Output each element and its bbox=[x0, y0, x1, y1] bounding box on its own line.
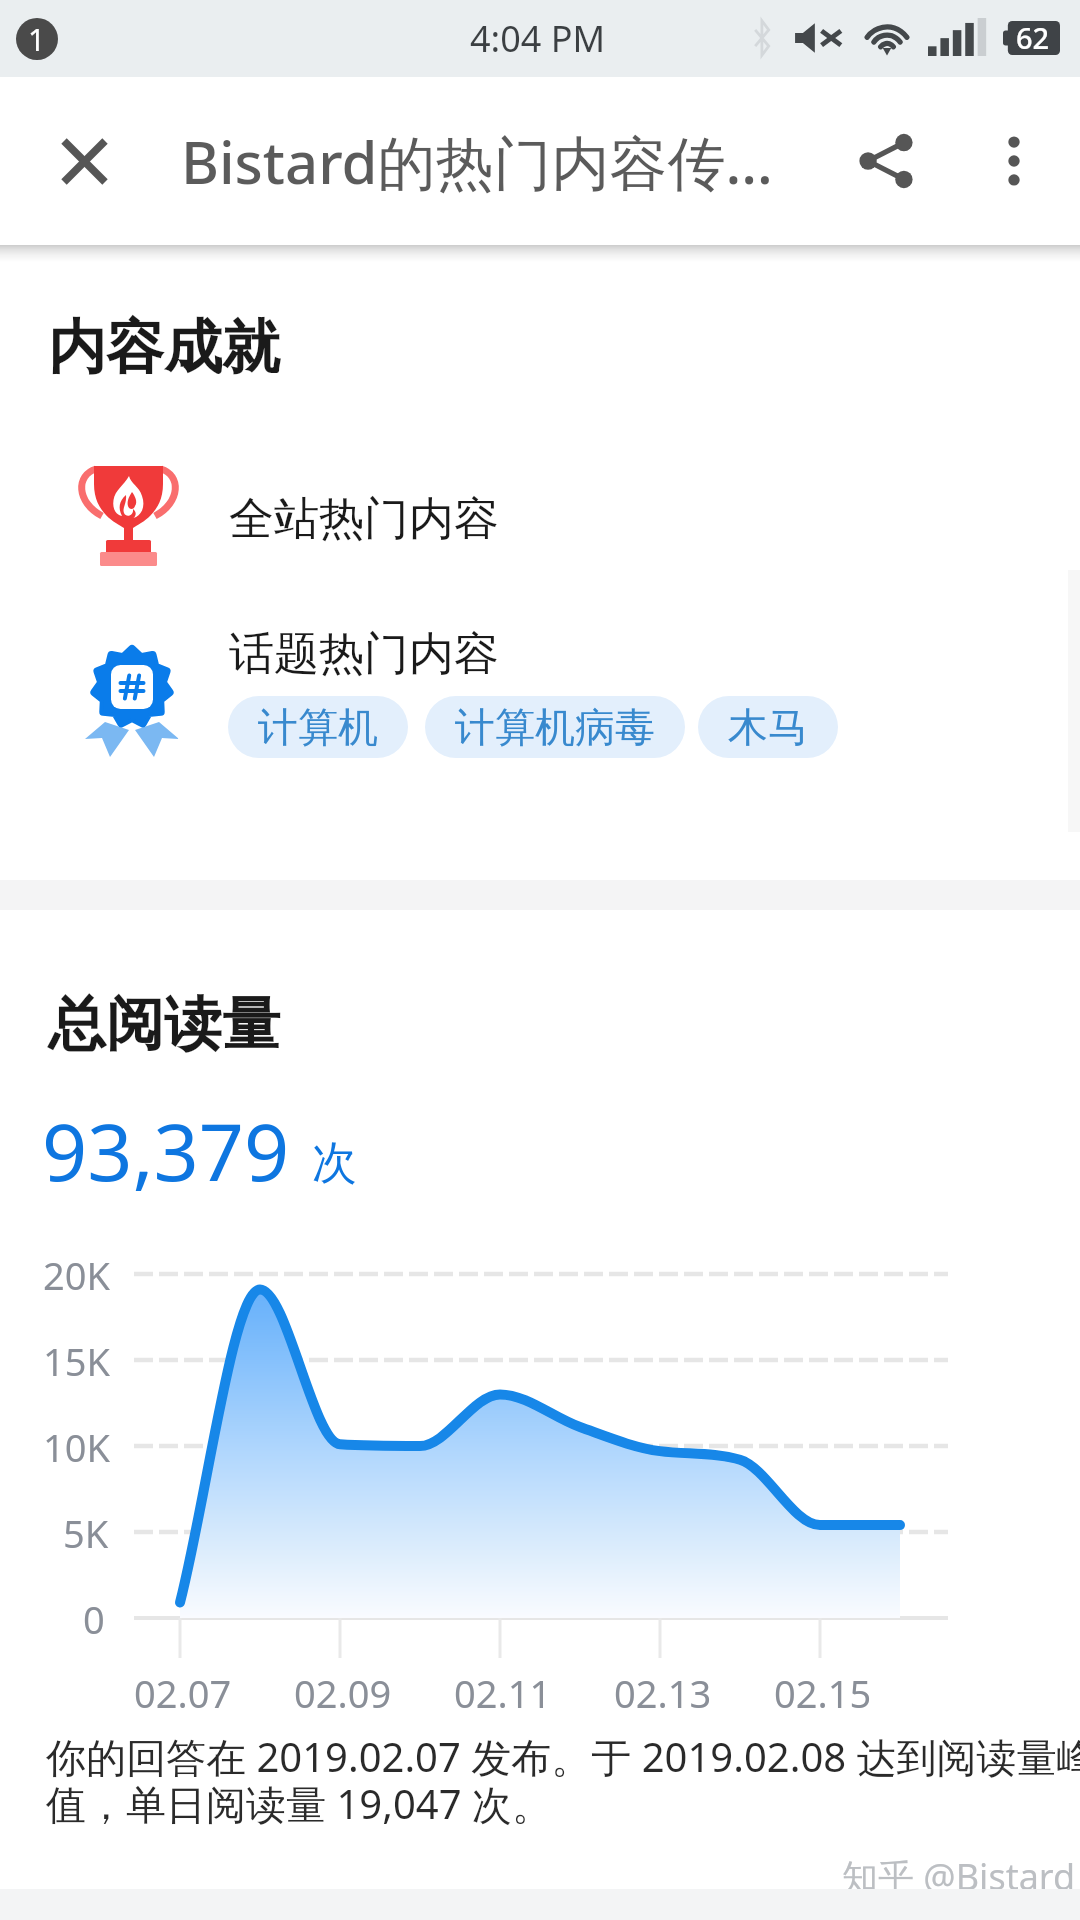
button[interactable]: 话题热门内容 bbox=[0, 620, 1080, 778]
staticText: 木马 bbox=[728, 702, 808, 752]
staticText: 02.07 bbox=[134, 1667, 232, 1719]
staticText: 02.11 bbox=[454, 1667, 552, 1719]
button[interactable]: 计算机 bbox=[228, 696, 408, 758]
button[interactable]: 木马 bbox=[698, 696, 838, 758]
staticText: 5K bbox=[63, 1507, 109, 1559]
staticText: 02.09 bbox=[294, 1667, 392, 1719]
button[interactable]: Close bbox=[39, 116, 129, 206]
staticText: 次 bbox=[312, 1135, 357, 1192]
staticText: 1 bbox=[28, 19, 46, 60]
staticText: Bistard的热门内容传... bbox=[181, 122, 773, 201]
staticText: 4:04 PM bbox=[470, 14, 606, 63]
staticText: 0 bbox=[83, 1593, 105, 1645]
staticText: 02.13 bbox=[614, 1667, 712, 1719]
staticText: 知乎 @Bistard bbox=[842, 1852, 1076, 1901]
button[interactable]: 计算机病毒 bbox=[425, 696, 685, 758]
staticText: 你的回答在 2019.02.07 发布。于 2019.02.08 达到阅读量峰值… bbox=[46, 1729, 1080, 1831]
staticText: 计算机病毒 bbox=[455, 702, 655, 752]
button[interactable]: Share bbox=[841, 116, 931, 206]
staticText: 15K bbox=[43, 1335, 110, 1387]
staticText: 话题热门内容 bbox=[229, 626, 499, 683]
staticText: 93,379 bbox=[42, 1097, 290, 1205]
staticText: 总阅读量 bbox=[48, 988, 280, 1061]
staticText: 10K bbox=[43, 1421, 110, 1473]
staticText: 计算机 bbox=[258, 702, 378, 752]
staticText: 20K bbox=[43, 1249, 110, 1301]
staticText: 内容成就 bbox=[48, 311, 280, 384]
staticText: 全站热门内容 bbox=[229, 491, 499, 548]
staticText: 02.15 bbox=[774, 1667, 872, 1719]
staticText: 62 bbox=[1016, 18, 1050, 57]
button[interactable]: More options bbox=[969, 116, 1059, 206]
button[interactable]: 全站热门内容 bbox=[0, 460, 1080, 578]
